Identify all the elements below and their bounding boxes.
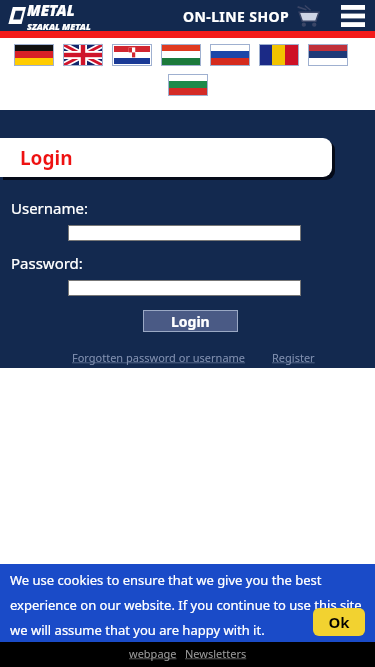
button[interactable]: Register (272, 350, 315, 365)
button[interactable]: Szakal Metal home (6, 0, 91, 31)
staticText: Forgotten password or username (72, 350, 246, 365)
button[interactable]: User terms and conditions (6, 613, 143, 628)
staticText: We use cookies to ensure that we give yo… (10, 571, 365, 638)
button[interactable]: Szakal Metal (312, 613, 369, 643)
button[interactable]: Newsletters (185, 646, 247, 661)
staticText: User terms and conditions (6, 613, 143, 628)
staticText: Username: (11, 198, 88, 218)
button[interactable]: Menu (341, 5, 365, 27)
button[interactable]: webpage (129, 646, 177, 661)
button[interactable]: Language (112, 44, 152, 66)
staticText: Password: (11, 253, 83, 273)
button[interactable]: Forgotten password or username (72, 350, 246, 365)
button[interactable]: Language (161, 44, 201, 66)
staticText: Newsletters (185, 646, 247, 661)
staticText: METAL (27, 0, 75, 20)
button[interactable]: Warranty conditions (150, 613, 255, 628)
button[interactable]: Language (259, 44, 299, 66)
staticText: Login (171, 312, 210, 331)
button[interactable]: Language (63, 44, 103, 66)
button[interactable]: Username field (68, 225, 301, 241)
button[interactable]: Language (210, 44, 250, 66)
button[interactable]: Language (14, 44, 54, 66)
button[interactable]: Ok (313, 608, 365, 636)
staticText: webpage (129, 646, 177, 661)
staticText: Register (272, 350, 315, 365)
staticText: Login (20, 145, 73, 171)
button[interactable]: Language (308, 44, 348, 66)
staticText: ON-LINE SHOP (183, 7, 290, 26)
button[interactable]: Password field (68, 280, 301, 296)
staticText: Szakal Metal (312, 613, 369, 643)
button[interactable]: Language (168, 74, 208, 96)
staticText: SZAKAL METAL (27, 20, 91, 31)
button[interactable]: Login (143, 310, 238, 332)
staticText: Ok (328, 612, 350, 632)
staticText: Warranty conditions (150, 613, 255, 628)
button[interactable]: ON-LINE SHOP (183, 4, 321, 28)
